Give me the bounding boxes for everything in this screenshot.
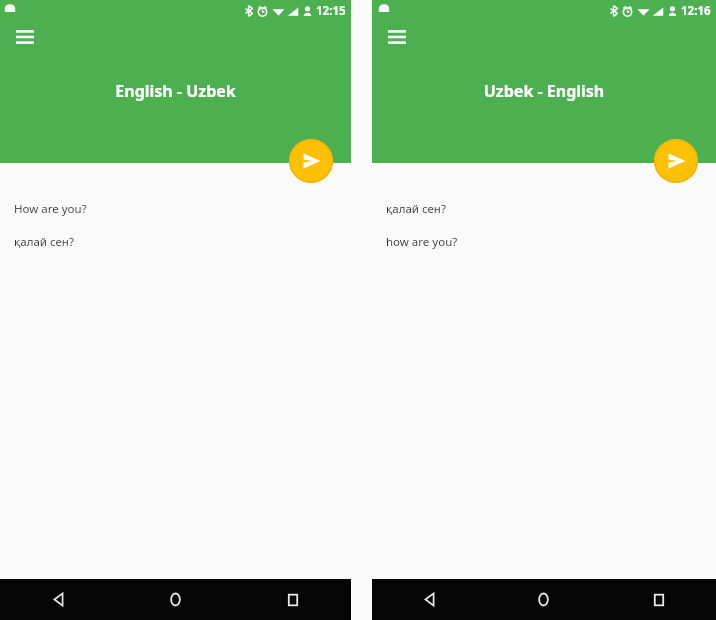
button[interactable]: Recents xyxy=(601,579,716,620)
staticText: қалай сен? xyxy=(14,234,74,250)
button[interactable]: Back xyxy=(372,579,486,620)
staticText: how are you? xyxy=(386,234,458,250)
staticText: Uzbek - English xyxy=(372,80,716,102)
button[interactable]: Translate xyxy=(289,139,333,183)
button[interactable]: Translate xyxy=(654,139,698,183)
staticText: 12:16 xyxy=(681,3,711,19)
button[interactable]: Home xyxy=(117,579,234,620)
staticText: қалай сен? xyxy=(386,201,446,217)
button[interactable]: Open navigation menu xyxy=(10,22,40,52)
button[interactable]: Recents xyxy=(234,579,351,620)
button[interactable]: Back xyxy=(0,579,117,620)
staticText: 12:15 xyxy=(316,3,346,19)
staticText: How are you? xyxy=(14,201,87,217)
button[interactable]: Open navigation menu xyxy=(382,22,412,52)
staticText: English - Uzbek xyxy=(0,80,351,102)
button[interactable]: Home xyxy=(486,579,601,620)
